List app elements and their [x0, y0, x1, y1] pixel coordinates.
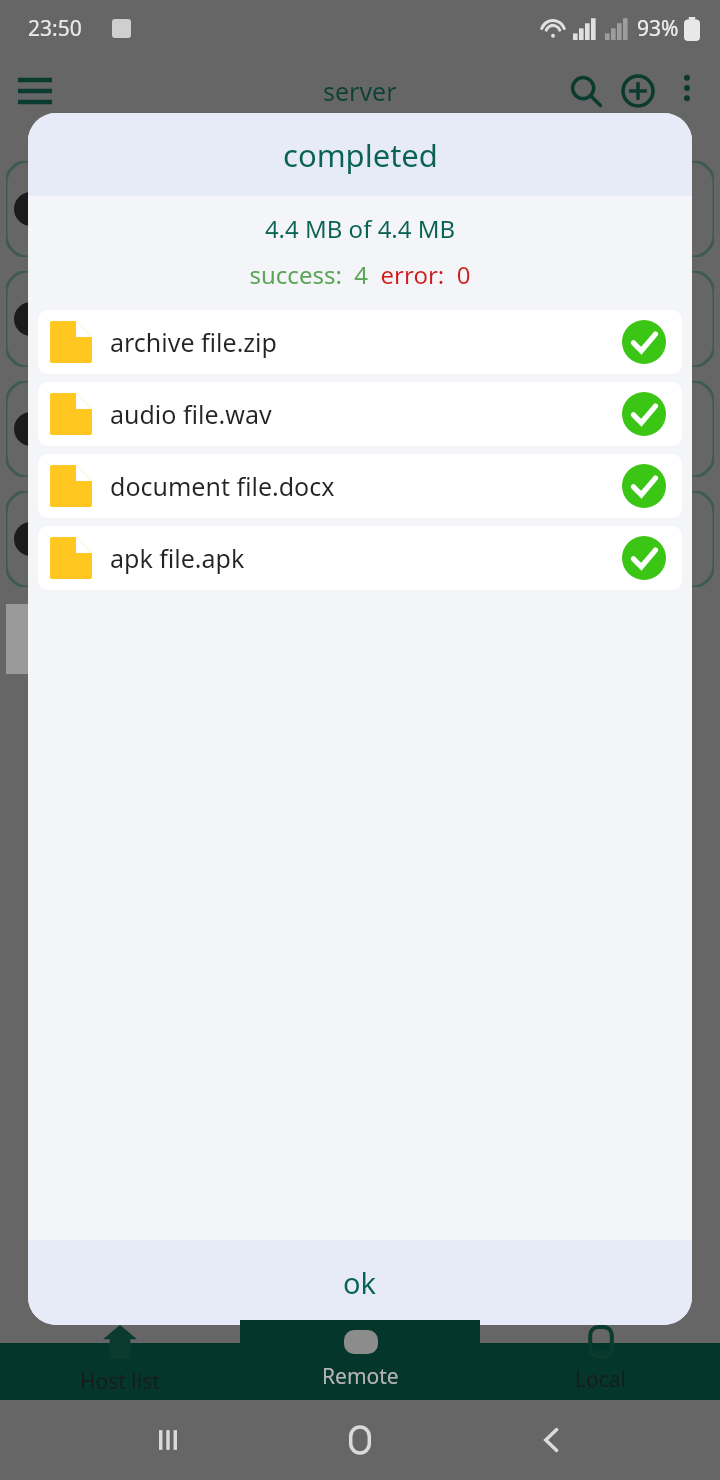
button[interactable]: Remote: [240, 1320, 480, 1400]
button[interactable]: Local: [480, 1320, 720, 1400]
button[interactable]: Home: [336, 1416, 384, 1464]
button[interactable]: More options: [664, 65, 710, 111]
staticText: server: [323, 74, 397, 108]
staticText: 23:50: [28, 14, 82, 43]
button[interactable]: apk file.apk: [38, 526, 682, 590]
staticText: completed: [283, 134, 438, 176]
staticText: success: 4 error: 0: [28, 258, 692, 291]
staticText: audio file.wav: [110, 397, 272, 431]
button[interactable]: document file.docx: [38, 454, 682, 518]
staticText: Host list: [80, 1367, 160, 1396]
button[interactable]: archive file.zip: [38, 310, 682, 374]
staticText: document file.docx: [110, 469, 335, 503]
staticText: archive file.zip: [110, 325, 277, 359]
button[interactable]: Add: [612, 65, 664, 117]
button[interactable]: Host list: [0, 1320, 240, 1400]
button[interactable]: Menu: [12, 68, 58, 114]
button[interactable]: Back: [528, 1416, 576, 1464]
button[interactable]: ok: [28, 1240, 692, 1325]
button[interactable]: audio file.wav: [38, 382, 682, 446]
button[interactable]: Recents: [144, 1416, 192, 1464]
staticText: Local: [575, 1365, 626, 1394]
button[interactable]: Search: [560, 65, 612, 117]
staticText: 93%: [637, 14, 679, 43]
staticText: apk file.apk: [110, 541, 245, 575]
staticText: Remote: [322, 1362, 399, 1391]
staticText: ok: [343, 1263, 377, 1302]
staticText: 4.4 MB of 4.4 MB: [28, 212, 692, 245]
